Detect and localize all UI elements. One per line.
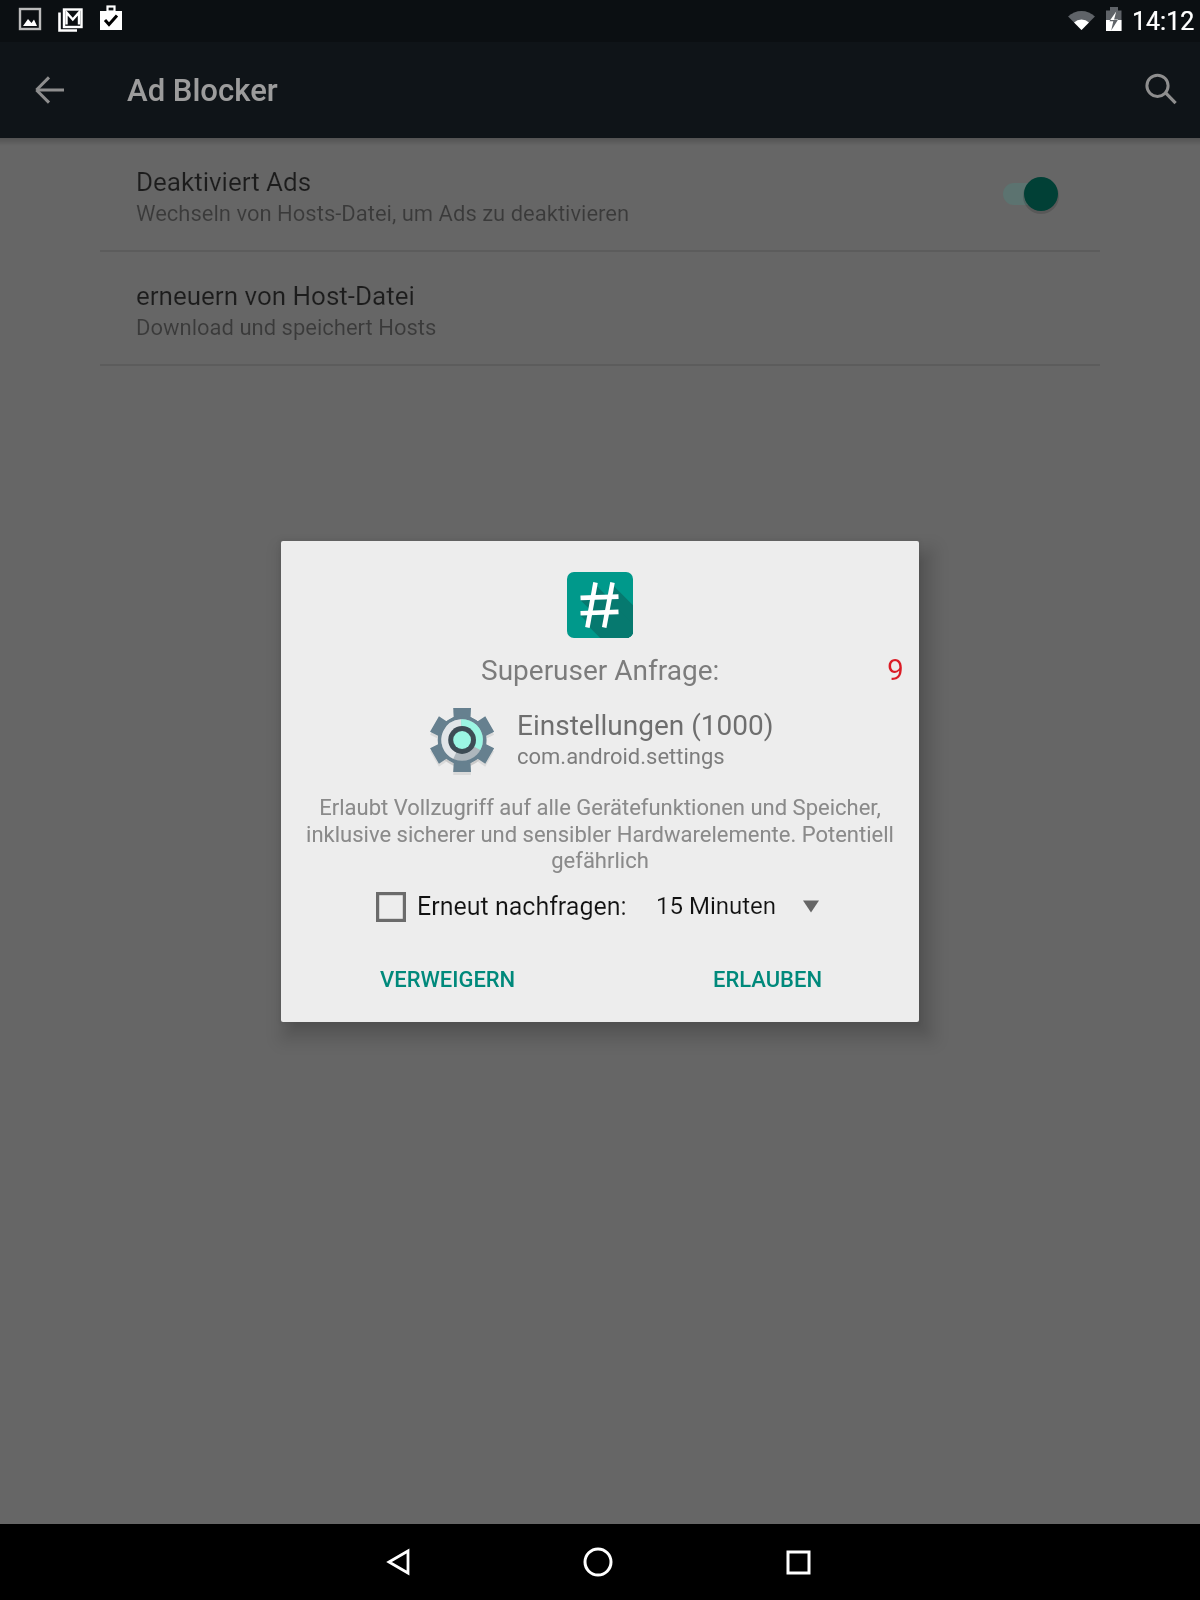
staticText: ERLAUBEN: [713, 967, 823, 993]
button[interactable]: Back: [367, 1529, 433, 1595]
staticText: erneuern von Host-Datei: [136, 281, 415, 311]
button[interactable]: Back: [26, 60, 86, 120]
button[interactable]: Erneut nachfragen: [363, 879, 419, 935]
staticText: Wechseln von Hosts-Datei, um Ads zu deak…: [136, 201, 630, 227]
button[interactable]: Home: [565, 1529, 631, 1595]
button[interactable]: Search: [1131, 60, 1191, 120]
button[interactable]: Toggle ad blocking: [995, 169, 1069, 219]
staticText: 9: [887, 652, 904, 687]
button[interactable]: ERLAUBEN: [697, 953, 839, 1007]
staticText: Ad Blocker: [127, 72, 278, 108]
button[interactable]: erneuern von Host-Datei: [0, 252, 1200, 366]
button[interactable]: 15 Minuten: [656, 883, 829, 929]
staticText: Erlaubt Vollzugriff auf alle Gerätefunkt…: [301, 795, 899, 873]
button[interactable]: Deaktiviert Ads: [0, 138, 1200, 252]
button[interactable]: VERWEIGERN: [364, 953, 532, 1007]
staticText: Deaktiviert Ads: [136, 167, 312, 197]
staticText: Superuser Anfrage:: [481, 654, 720, 687]
button[interactable]: Recent apps: [765, 1529, 831, 1595]
staticText: Einstellungen (1000): [517, 709, 774, 742]
staticText: com.android.settings: [517, 744, 725, 770]
staticText: 14:12: [1132, 7, 1195, 36]
staticText: 15 Minuten: [656, 892, 777, 920]
staticText: Download und speichert Hosts: [136, 315, 437, 341]
staticText: VERWEIGERN: [380, 967, 516, 993]
staticText: Erneut nachfragen:: [417, 892, 627, 921]
